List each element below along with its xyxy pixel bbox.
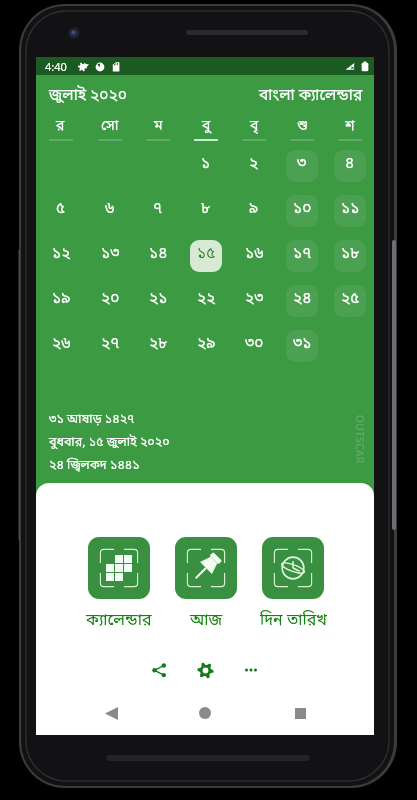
button[interactable]: ১১ [334, 195, 366, 227]
staticText: দিন তারিখ [260, 610, 327, 631]
button[interactable]: ২৩ [238, 285, 270, 317]
button[interactable]: ১ [190, 150, 222, 182]
button[interactable]: বু [182, 115, 230, 143]
staticText: ১৮ [341, 244, 360, 265]
staticText: ৪ [345, 154, 355, 175]
button[interactable]: ৮ [190, 195, 222, 227]
button[interactable]: ৫ [45, 195, 77, 227]
button[interactable]: ২৪ [286, 285, 318, 317]
button[interactable]: বৃ [230, 115, 278, 143]
staticText: র [56, 117, 65, 136]
staticText: ৯ [249, 199, 259, 220]
staticText: বুধবার, ১৫ জুলাই ২০২০ [49, 435, 170, 452]
staticText: ৩১ আষাড় ১৪২৭ [49, 412, 135, 429]
button[interactable]: ১০ [286, 195, 318, 227]
button[interactable]: ৯ [238, 195, 270, 227]
staticText: ৮ [201, 199, 211, 220]
button[interactable]: আজ [175, 537, 237, 631]
button[interactable]: Settings [189, 654, 221, 686]
staticText: ২১ [149, 289, 168, 310]
staticText: সো [101, 117, 119, 136]
button[interactable]: ১৭ [286, 240, 318, 272]
button[interactable]: ২৬ [45, 330, 77, 362]
staticText: ২৪ জ্বিলকদ ১৪৪১ [49, 458, 140, 475]
button[interactable]: Home [185, 693, 225, 733]
button[interactable]: ৪ [334, 150, 366, 182]
button[interactable]: ২০ [94, 285, 126, 317]
staticText: ৫ [56, 199, 66, 220]
staticText: 4:40 [45, 59, 67, 74]
staticText: ৩০ [245, 334, 264, 355]
staticText: ১৭ [293, 244, 312, 265]
staticText: ২৫ [341, 289, 360, 310]
button[interactable]: ৩১ [286, 330, 318, 362]
button[interactable]: ২৭ [94, 330, 126, 362]
staticText: ১ [201, 154, 211, 175]
button[interactable]: ম [134, 115, 182, 143]
button[interactable]: ১২ [45, 240, 77, 272]
staticText: ২৭ [101, 334, 120, 355]
staticText: ২৮ [149, 334, 168, 355]
button[interactable]: ১৬ [238, 240, 270, 272]
button[interactable]: ১৩ [94, 240, 126, 272]
button[interactable]: দিন তারিখ [262, 537, 324, 631]
button[interactable]: Share [143, 654, 175, 686]
staticText: ২৬ [52, 334, 71, 355]
button[interactable]: ক্যালেন্ডার [88, 537, 150, 631]
staticText: ২ [249, 154, 259, 175]
staticText: ২০ [101, 289, 120, 310]
staticText: ম [154, 117, 163, 136]
button[interactable]: ১৫ [190, 240, 222, 272]
staticText: ১৬ [245, 244, 264, 265]
button[interactable]: ৬ [94, 195, 126, 227]
button[interactable]: শু [278, 115, 326, 143]
button[interactable]: ১৪ [142, 240, 174, 272]
staticText: জুলাই ২০২০ [49, 86, 127, 107]
staticText: বাংলা ক্যালেন্ডার [259, 86, 363, 107]
staticText: ১০ [293, 199, 312, 220]
staticText: ২৩ [245, 289, 264, 310]
button[interactable]: ১৯ [45, 285, 77, 317]
staticText: বৃ [250, 117, 259, 136]
staticText: OUTSCAR [353, 415, 367, 463]
button[interactable]: ২ [238, 150, 270, 182]
staticText: ৭ [153, 199, 163, 220]
button[interactable]: ২৮ [142, 330, 174, 362]
button[interactable]: ৩ [286, 150, 318, 182]
staticText: শু [297, 117, 308, 136]
staticText: ৩১ [293, 334, 312, 355]
staticText: ৬ [105, 199, 115, 220]
button[interactable]: শ [326, 115, 374, 143]
button[interactable]: ২৫ [334, 285, 366, 317]
button[interactable]: ২২ [190, 285, 222, 317]
staticText: ১১ [341, 199, 360, 220]
staticText: শ [345, 117, 355, 136]
staticText: ২২ [197, 289, 216, 310]
button[interactable]: ২৯ [190, 330, 222, 362]
button[interactable]: ১৮ [334, 240, 366, 272]
button[interactable]: Back [91, 693, 131, 733]
staticText: ১৯ [52, 289, 71, 310]
button[interactable]: র [36, 115, 85, 143]
staticText: ১৪ [149, 244, 168, 265]
staticText: বু [202, 117, 211, 136]
button[interactable]: ২১ [142, 285, 174, 317]
staticText: ২৯ [197, 334, 216, 355]
staticText: ক্যালেন্ডার [86, 610, 152, 631]
staticText: ৩ [297, 154, 307, 175]
button[interactable]: More options [235, 654, 267, 686]
staticText: ১৫ [197, 244, 216, 265]
staticText: ২৪ [293, 289, 312, 310]
button[interactable]: Recents [280, 693, 320, 733]
button[interactable]: ৩০ [238, 330, 270, 362]
staticText: ১৩ [101, 244, 120, 265]
button[interactable]: সো [85, 115, 134, 143]
button[interactable]: ৭ [142, 195, 174, 227]
staticText: ১২ [52, 244, 71, 265]
staticText: আজ [190, 610, 223, 631]
